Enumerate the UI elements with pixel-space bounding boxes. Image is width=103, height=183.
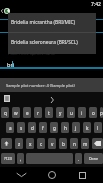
staticText: x (29, 141, 32, 147)
staticText: s (20, 125, 23, 131)
button[interactable]: k (83, 122, 91, 133)
button[interactable]: r (34, 107, 42, 118)
staticText: b (62, 141, 65, 147)
staticText: bri (7, 61, 15, 68)
button[interactable]: x (26, 138, 34, 149)
staticText: n (73, 141, 76, 147)
button[interactable]: i (78, 107, 86, 118)
button[interactable]: w (12, 107, 20, 118)
staticText: d (31, 125, 34, 131)
button[interactable]: d (28, 122, 36, 133)
staticText: w (14, 110, 18, 116)
staticText: k (86, 125, 89, 131)
staticText: , (20, 156, 22, 162)
staticText: Plant / tree species name (8, 51, 56, 56)
button[interactable]: o (89, 107, 97, 118)
staticText: h (64, 125, 67, 131)
button[interactable]: More suggestions (46, 92, 57, 107)
button[interactable]: h (61, 122, 69, 133)
staticText: Sample plot number: 4 (Sample plot) (6, 83, 75, 88)
staticText: r (37, 110, 39, 116)
button[interactable]: , (17, 153, 24, 164)
button[interactable]: y (56, 107, 64, 118)
button[interactable]: z (15, 138, 23, 149)
button[interactable]: q (1, 107, 9, 118)
button[interactable]: Recent apps (73, 167, 91, 183)
button[interactable]: Navigate up (0, 8, 4, 14)
button[interactable]: Shift (1, 138, 12, 149)
button[interactable]: l (94, 122, 102, 133)
staticText: j (75, 125, 77, 131)
button[interactable]: a (6, 122, 14, 133)
staticText: q (4, 110, 7, 116)
staticText: f (42, 125, 44, 131)
staticText: m (83, 141, 88, 147)
staticText: . (78, 156, 80, 162)
button[interactable]: b (59, 138, 67, 149)
staticText: o (92, 110, 95, 116)
button[interactable]: Keyboard settings (4, 95, 10, 102)
staticText: y (59, 110, 62, 116)
staticText: l (97, 125, 99, 131)
staticText: p (100, 110, 103, 116)
staticText: i (81, 110, 83, 116)
button[interactable]: s (17, 122, 25, 133)
button[interactable]: Hide keyboard (12, 167, 30, 183)
button[interactable]: j (72, 122, 80, 133)
staticText: Bridelia scleroneura (BRI/SCL) (11, 39, 78, 46)
staticText: 7:42 (91, 1, 101, 8)
staticText: z (18, 141, 21, 147)
staticText: c (40, 141, 43, 147)
button[interactable]: u (67, 107, 75, 118)
button[interactable]: Bridelia scleroneura (BRI/SCL) (8, 33, 96, 54)
button[interactable]: p (100, 107, 103, 118)
staticText: Done (89, 156, 99, 161)
button[interactable]: Backspace (92, 138, 103, 149)
button[interactable]: m (81, 138, 89, 149)
button[interactable]: Bridelia micrantha (BRI/MIC) (8, 13, 96, 32)
staticText: e (26, 110, 29, 116)
button[interactable]: v (48, 138, 56, 149)
button[interactable]: . (75, 153, 82, 164)
staticText: Bridelia micrantha (BRI/MIC) (11, 19, 76, 26)
staticText: u (70, 110, 73, 116)
button[interactable]: f (39, 122, 47, 133)
button[interactable]: ?123 (1, 153, 15, 164)
button[interactable]: c (37, 138, 45, 149)
button[interactable]: t (45, 107, 53, 118)
staticText: t (48, 110, 50, 116)
staticText: v (51, 141, 54, 147)
button[interactable]: e (23, 107, 31, 118)
staticText: g (53, 125, 56, 131)
button[interactable]: g (50, 122, 58, 133)
button[interactable]: Done (84, 153, 103, 164)
button[interactable]: Home (43, 167, 61, 183)
staticText: ?123 (4, 156, 12, 161)
staticText: a (9, 125, 12, 131)
button[interactable]: n (70, 138, 78, 149)
